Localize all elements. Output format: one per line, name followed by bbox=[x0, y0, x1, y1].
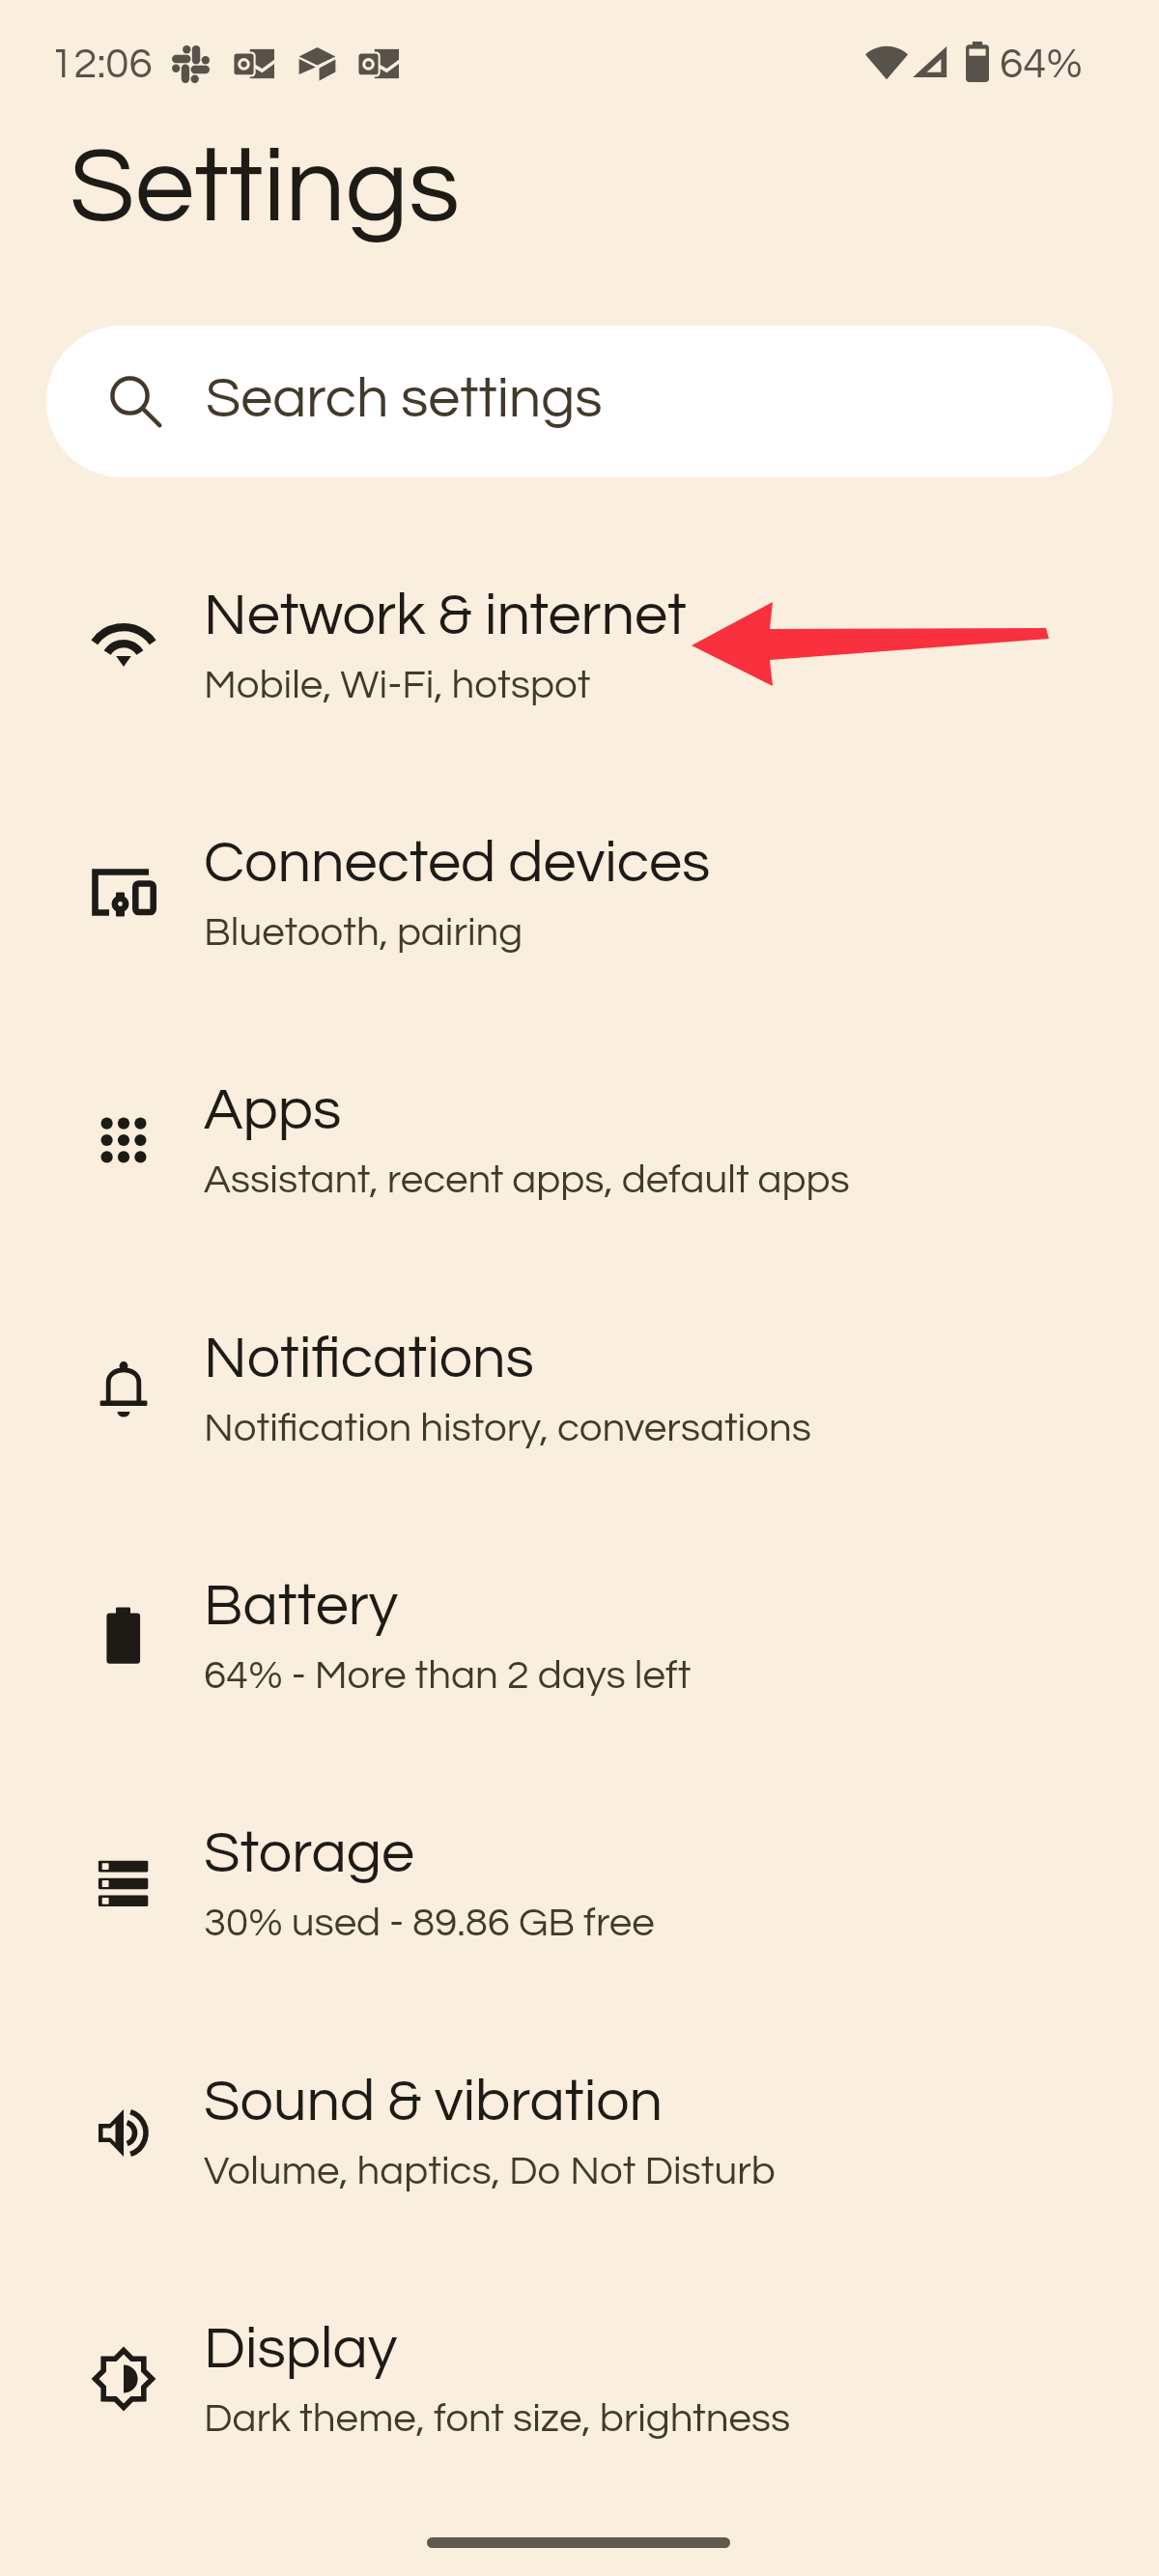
button[interactable]: Display bbox=[0, 2255, 1159, 2503]
staticText: 12:06 bbox=[50, 43, 153, 86]
button[interactable]: Apps bbox=[0, 1016, 1159, 1264]
button[interactable]: Notifications bbox=[0, 1265, 1159, 1512]
other: Outlook notification bbox=[358, 43, 399, 84]
staticText: Connected devices bbox=[204, 833, 711, 894]
staticText: Settings bbox=[70, 133, 460, 243]
other: Box notification bbox=[297, 43, 337, 83]
other: Slack notification bbox=[172, 45, 210, 83]
staticText: Dark theme, font size, brightness bbox=[204, 2398, 791, 2440]
button[interactable]: Sound & vibration bbox=[0, 2008, 1159, 2255]
other: Outlook notification bbox=[234, 43, 274, 84]
staticText: Notifications bbox=[204, 1329, 534, 1389]
other: Search bbox=[110, 376, 162, 428]
staticText: Bluetooth, pairing bbox=[204, 912, 523, 954]
staticText: Mobile, Wi-Fi, hotspot bbox=[204, 665, 591, 706]
button[interactable]: Connected devices bbox=[0, 769, 1159, 1016]
staticText: Display bbox=[204, 2319, 398, 2380]
other: Battery 64 percent bbox=[965, 42, 990, 82]
other: Wi-Fi signal bbox=[865, 43, 908, 80]
staticText: Volume, haptics, Do Not Disturb bbox=[204, 2151, 776, 2192]
other: Mobile signal bbox=[912, 43, 948, 80]
button[interactable]: Storage bbox=[0, 1760, 1159, 2007]
button[interactable]: Network & internet bbox=[0, 522, 1159, 769]
staticText: Apps bbox=[204, 1080, 342, 1141]
staticText: Battery bbox=[204, 1576, 399, 1637]
staticText: Notification history, conversations bbox=[204, 1408, 811, 1449]
staticText: Network & internet bbox=[204, 586, 687, 646]
staticText: Search settings bbox=[206, 370, 603, 429]
button[interactable]: Search bbox=[46, 326, 1113, 477]
staticText: Storage bbox=[204, 1823, 415, 1884]
other: Home bbox=[427, 2537, 730, 2548]
staticText: Sound & vibration bbox=[204, 2072, 664, 2132]
staticText: 64% - More than 2 days left bbox=[204, 1655, 692, 1697]
staticText: 64% bbox=[1000, 43, 1083, 86]
staticText: Assistant, recent apps, default apps bbox=[204, 1159, 850, 1201]
staticText: 30% used - 89.86 GB free bbox=[204, 1903, 655, 1944]
button[interactable]: Battery bbox=[0, 1512, 1159, 1760]
